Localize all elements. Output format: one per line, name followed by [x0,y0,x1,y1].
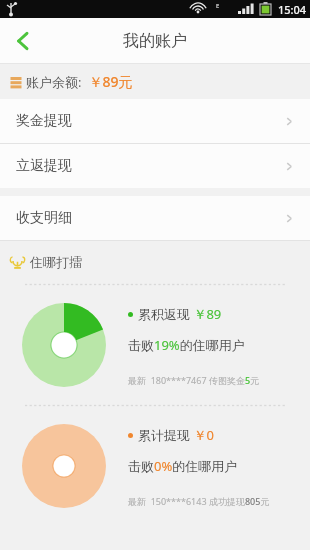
staticText: 奖金提现 [16,112,72,130]
staticText: E [216,2,220,10]
staticText: 最新 180****7467 传图奖金5元 [128,374,260,386]
button[interactable]: 立返提现 [0,144,310,188]
button[interactable]: 奖金提现 [0,99,310,143]
staticText: 收支明细 [16,209,72,227]
staticText: 击败19%的住哪用户 [128,336,245,354]
staticText: 击败0%的住哪用户 [128,457,238,475]
staticText: 住哪打擂 [30,254,82,270]
staticText: 15:04 [278,2,307,17]
staticText: 最新 150****6143 成功提现805元 [128,495,270,507]
staticText: 累计提现 ￥0 [138,426,214,444]
staticText: 累积返现 ￥89 [138,305,222,323]
staticText: 立返提现 [16,157,72,175]
staticText: 我的账户 [123,31,187,51]
button[interactable]: Back [0,18,46,64]
staticText: 账户余额: ￥89元 [26,72,133,91]
button[interactable]: 收支明细 [0,196,310,240]
